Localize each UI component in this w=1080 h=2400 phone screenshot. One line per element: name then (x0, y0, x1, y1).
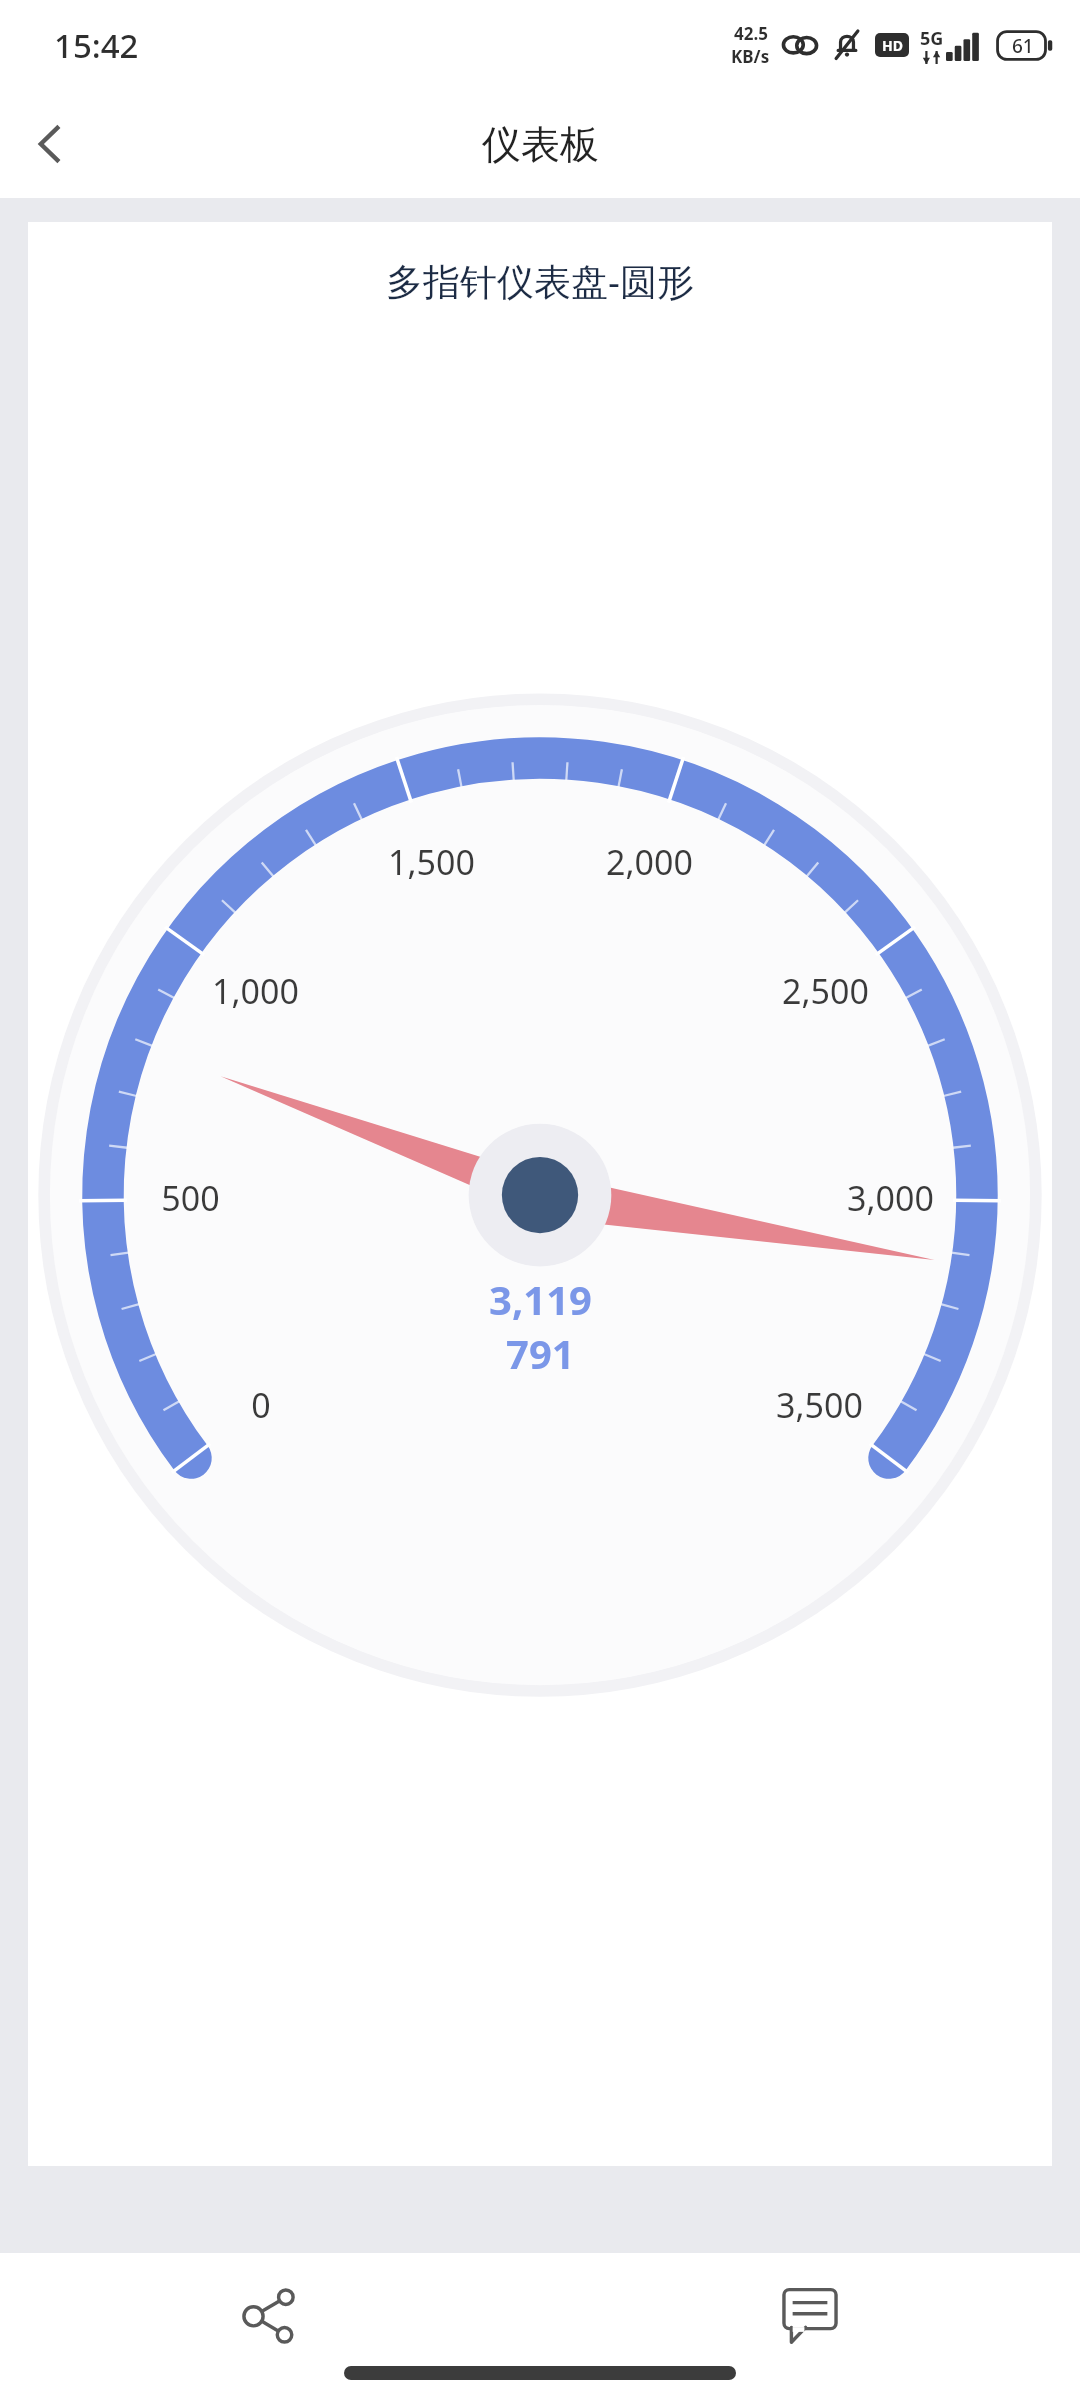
staticText: 5G (920, 26, 944, 51)
staticText: 791 (506, 1326, 575, 1380)
staticText: 500 (161, 1175, 220, 1221)
staticText: 1,000 (212, 968, 299, 1014)
staticText: 2,000 (606, 839, 693, 885)
staticText: 1,500 (388, 839, 475, 885)
staticText: 61 (1012, 33, 1034, 59)
staticText: 42.5 (734, 22, 768, 45)
staticText: 3,000 (847, 1175, 934, 1221)
staticText: 15:42 (54, 23, 139, 68)
staticText: 0 (251, 1382, 271, 1428)
button[interactable]: Share (222, 2267, 318, 2363)
button[interactable]: Back (0, 94, 100, 194)
staticText: HD (882, 36, 903, 55)
button[interactable]: Comment (762, 2267, 858, 2363)
staticText: 2,500 (782, 968, 869, 1014)
staticText: 3,119 (489, 1272, 592, 1326)
staticText: 仪表板 (482, 120, 599, 169)
staticText: 3,500 (776, 1382, 863, 1428)
button[interactable]: 多指针仪表盘-圆形 (28, 222, 1052, 2166)
staticText: 多指针仪表盘-圆形 (386, 255, 694, 306)
staticText: KB/s (731, 45, 770, 68)
